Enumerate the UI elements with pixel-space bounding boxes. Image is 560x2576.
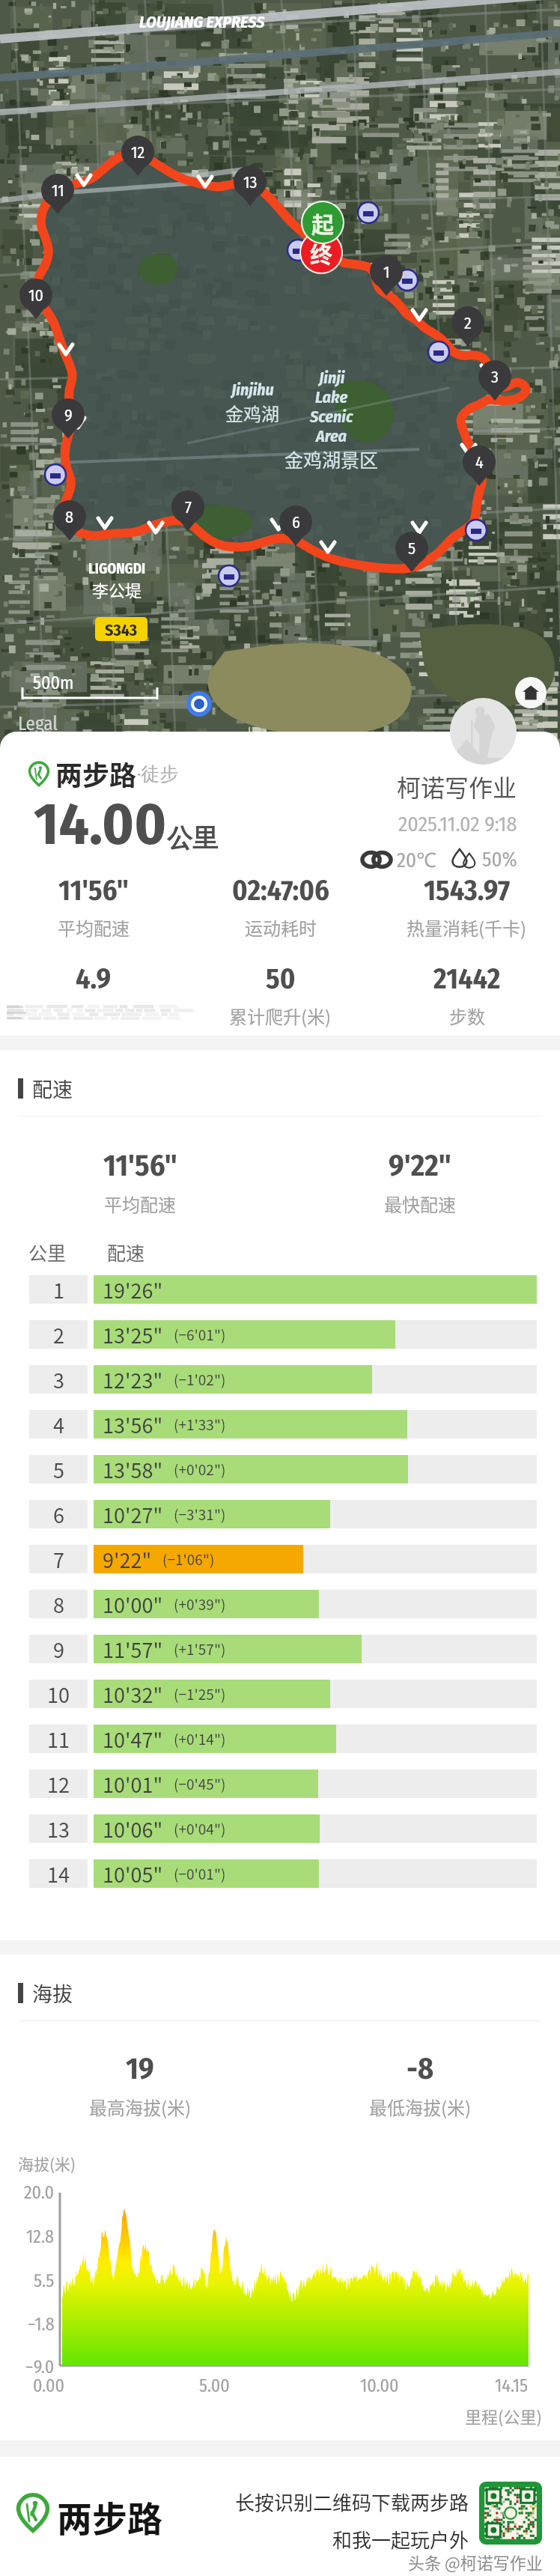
staticText: (+0'02")	[174, 1459, 226, 1480]
button[interactable]: 50	[187, 962, 374, 1029]
staticText: 12	[47, 1770, 70, 1798]
staticText: 10	[47, 1680, 70, 1708]
button[interactable]: 10	[0, 1680, 560, 1708]
button[interactable]: 终	[299, 231, 343, 274]
staticText: Legal	[18, 713, 58, 735]
staticText: (+0'14")	[174, 1728, 226, 1749]
staticText: 4	[475, 452, 484, 472]
staticText: LIGONGDI	[88, 560, 146, 577]
button[interactable]: Recenter map	[515, 677, 547, 708]
staticText: 长按识别二维码下载两步路	[235, 2488, 469, 2516]
button[interactable]: Kilometre marker 1	[370, 255, 403, 296]
staticText: 金鸡湖景区	[284, 446, 379, 473]
button[interactable]: 1543.97	[374, 873, 560, 941]
staticText: (−1'25")	[174, 1683, 226, 1704]
button[interactable]: 02:47:06	[187, 873, 374, 941]
button[interactable]: Kilometre marker 12	[121, 136, 154, 176]
staticText: 最快配速	[384, 1191, 456, 1217]
staticText: 13	[47, 1814, 70, 1843]
staticText: 5.5	[34, 2270, 55, 2292]
button[interactable]: 2	[0, 1320, 560, 1349]
button[interactable]: 起	[301, 201, 344, 244]
staticText: 10'06"	[103, 1814, 163, 1843]
button[interactable]: 11'56"	[0, 873, 187, 941]
button[interactable]: 14	[0, 1859, 560, 1888]
button[interactable]: 5	[0, 1455, 560, 1483]
staticText: 海拔(米)	[18, 2152, 76, 2175]
staticText: 50%	[482, 848, 517, 872]
staticText: (−0'01")	[174, 1863, 226, 1884]
button[interactable]: 8	[0, 1590, 560, 1618]
staticText: 14.15	[495, 2375, 529, 2397]
staticText: 柯诺写作业	[397, 769, 517, 804]
staticText: -8	[407, 2051, 434, 2087]
staticText: 4	[53, 1410, 64, 1439]
staticText: (−1'06")	[162, 1549, 215, 1570]
staticText: −1.8	[28, 2314, 55, 2336]
button[interactable]: Kilometre marker 5	[395, 532, 428, 572]
staticText: 12'23"	[103, 1365, 163, 1394]
button[interactable]: 12	[0, 1770, 560, 1798]
button[interactable]: Kilometre marker 4	[463, 446, 496, 486]
button[interactable]: 13	[0, 1814, 560, 1843]
staticText: 起	[311, 207, 334, 239]
button[interactable]: 3	[0, 1365, 560, 1394]
button[interactable]: 6	[0, 1500, 560, 1528]
staticText: LOUJIANG EXPRESS	[139, 12, 265, 31]
staticText: Jinji	[319, 368, 345, 387]
staticText: 9'22"	[103, 1545, 152, 1573]
staticText: 5	[408, 538, 416, 558]
staticText: 头条 @柯诺写作业	[408, 2550, 543, 2574]
staticText: 11	[52, 180, 64, 200]
staticText: (−6'01")	[174, 1324, 226, 1345]
staticText: 平均配速	[104, 1191, 176, 1217]
staticText: 海拔	[32, 1978, 73, 2008]
staticText: 和我一起玩户外	[332, 2525, 469, 2554]
staticText: 2	[53, 1320, 64, 1349]
button[interactable]: Kilometre marker 11	[41, 174, 74, 214]
button[interactable]: 1	[0, 1275, 560, 1304]
button[interactable]: Jinjihu	[0, 0, 560, 749]
staticText: 8	[65, 507, 74, 526]
staticText: 13'56"	[103, 1410, 163, 1439]
button[interactable]: 11	[0, 1725, 560, 1753]
staticText: 公里	[167, 822, 218, 854]
staticText: 配速	[107, 1239, 145, 1266]
button[interactable]: 4	[0, 1410, 560, 1439]
staticText: 12	[131, 142, 145, 162]
button[interactable]: 21442	[374, 962, 560, 1029]
staticText: 7	[53, 1545, 64, 1573]
staticText: 配速	[32, 1074, 73, 1103]
staticText: 10'00"	[103, 1590, 163, 1618]
staticText: 3	[53, 1365, 64, 1394]
staticText: 1543.97	[424, 873, 511, 908]
staticText: 20.0	[24, 2182, 55, 2204]
staticText: 8	[53, 1590, 64, 1618]
staticText: Scenic	[310, 407, 353, 426]
button[interactable]: Kilometre marker 6	[279, 505, 312, 546]
staticText: 10'32"	[103, 1680, 163, 1708]
button[interactable]: User avatar	[450, 698, 517, 765]
button[interactable]: Kilometre marker 9	[52, 398, 85, 439]
button[interactable]: 7	[0, 1545, 560, 1573]
staticText: Jinjihu	[231, 380, 274, 399]
button[interactable]: Kilometre marker 8	[53, 500, 86, 541]
staticText: 500m	[33, 672, 74, 694]
button[interactable]: Kilometre marker 13	[234, 165, 267, 206]
button[interactable]: Kilometre marker 7	[171, 490, 204, 531]
staticText: 10'47"	[103, 1725, 163, 1753]
staticText: 里程(公里)	[465, 2404, 542, 2428]
staticText: 20℃	[397, 845, 436, 873]
staticText: 21442	[433, 962, 501, 996]
staticText: 13'25"	[103, 1320, 163, 1349]
button[interactable]: Kilometre marker 2	[451, 306, 484, 347]
staticText: 3	[491, 367, 499, 386]
staticText: 6	[292, 512, 300, 532]
button[interactable]: 9	[0, 1635, 560, 1663]
button[interactable]: Kilometre marker 3	[478, 360, 511, 401]
button[interactable]: Kilometre marker 10	[19, 279, 52, 319]
button[interactable]: Download QR code	[479, 2482, 542, 2545]
button[interactable]: 4.9	[0, 962, 187, 1022]
staticText: 10	[28, 285, 44, 305]
staticText: 10'01"	[103, 1770, 163, 1798]
